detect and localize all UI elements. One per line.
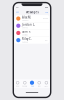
staticText: Thanks! [22,20,28,21]
staticText: Sam P. [22,30,31,34]
button[interactable]: Sam P. [15,29,49,36]
staticText: Sent files [22,34,28,36]
staticText: Edit [16,11,18,13]
button[interactable]: Files [36,80,43,87]
staticText: Catch up [22,41,28,43]
button[interactable]: Edit [16,11,19,13]
staticText: Jordan L. [22,23,35,26]
button[interactable]: Jordan L. [15,22,49,29]
button[interactable]: New [44,11,48,13]
staticText: Chat [30,85,33,87]
staticText: More [44,85,48,87]
staticText: See you [22,27,28,29]
staticText: 9:24 AM [43,18,48,19]
staticText: Messages [25,10,38,14]
staticText: New [45,11,48,13]
staticText: Mon [45,39,48,41]
staticText: People [22,85,27,87]
staticText: Files [38,85,41,87]
staticText: Riley C. [22,37,32,41]
button[interactable]: Chat [28,80,36,87]
button[interactable]: Riley C. [15,37,49,44]
button[interactable]: Inbox [14,80,21,87]
button[interactable]: Alex M. [15,15,49,22]
button[interactable]: More [43,80,50,87]
button[interactable]: People [21,80,28,87]
staticText: 9:41 [16,6,19,8]
staticText: Alex M. [22,16,31,19]
staticText: Inbox [16,85,20,87]
